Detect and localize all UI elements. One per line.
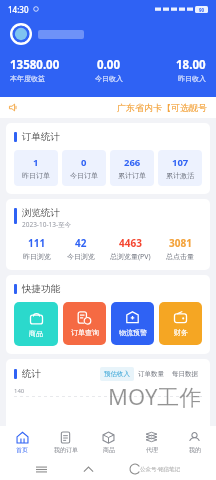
staticText: 0.00 bbox=[97, 57, 120, 73]
button[interactable]: 代理 bbox=[130, 426, 173, 458]
staticText: 统计 bbox=[22, 368, 41, 380]
staticText: 昨日浏览 bbox=[23, 252, 51, 261]
staticText: 代理 bbox=[146, 446, 158, 454]
staticText: 42 bbox=[75, 236, 87, 250]
staticText: 总点击量 bbox=[166, 252, 194, 261]
button[interactable]: 订单查询 bbox=[63, 302, 106, 345]
staticText: 本年度收益 bbox=[10, 74, 45, 83]
staticText: 3081 bbox=[169, 236, 192, 250]
staticText: 浏览统计 bbox=[22, 207, 60, 219]
staticText: 90 bbox=[199, 7, 205, 13]
staticText: 每日数据 bbox=[172, 370, 198, 378]
staticText: 首页 bbox=[16, 446, 28, 454]
staticText: 快捷功能 bbox=[22, 283, 60, 295]
staticText: 广东省内卡【可选靓号 bbox=[117, 102, 207, 113]
other: Home bbox=[83, 464, 94, 475]
staticText: 昨日收入 bbox=[178, 74, 206, 83]
button[interactable]: 财务 bbox=[159, 302, 202, 345]
button[interactable]: 42 bbox=[59, 236, 103, 261]
button[interactable]: 0 bbox=[62, 150, 106, 186]
button[interactable]: 物流预警 bbox=[111, 302, 154, 345]
staticText: 物流预警 bbox=[119, 328, 147, 337]
staticText: 266 bbox=[124, 156, 141, 169]
staticText: 111 bbox=[28, 236, 46, 250]
button[interactable]: 107 bbox=[158, 150, 202, 186]
other: Menu bbox=[36, 464, 47, 475]
staticText: 18.00 bbox=[176, 57, 206, 73]
staticText: 我的订单 bbox=[54, 446, 78, 454]
other: Back bbox=[130, 464, 140, 474]
staticText: 0 bbox=[81, 156, 87, 169]
staticText: 2023-10-13-至今 bbox=[22, 220, 72, 229]
button[interactable]: 4463 bbox=[103, 236, 158, 262]
staticText: 14:30 bbox=[8, 4, 29, 15]
staticText: MOY工作 bbox=[108, 381, 202, 411]
staticText: 4463 bbox=[119, 236, 142, 250]
staticText: 公众号·铭信笔记 bbox=[140, 465, 180, 473]
staticText: 107 bbox=[172, 156, 189, 169]
button[interactable]: 商品 bbox=[14, 302, 58, 346]
button[interactable]: 111 bbox=[14, 236, 59, 261]
staticText: 预估收入 bbox=[104, 370, 130, 378]
staticText: 订单统计 bbox=[22, 131, 60, 143]
staticText: 总浏览量(PV) bbox=[110, 252, 151, 262]
staticText: 今日浏览 bbox=[67, 252, 95, 261]
staticText: 1 bbox=[33, 156, 39, 169]
button[interactable]: 广东省内卡【可选靓号 bbox=[0, 97, 216, 118]
button[interactable]: 我的 bbox=[173, 426, 216, 458]
staticText: 今日订单 bbox=[70, 171, 98, 180]
button[interactable]: 266 bbox=[110, 150, 154, 186]
staticText: 累计订单 bbox=[118, 171, 146, 180]
staticText: 财务 bbox=[174, 328, 188, 337]
button[interactable]: 预估收入 bbox=[100, 367, 134, 381]
button[interactable]: 每日数据 bbox=[168, 367, 202, 381]
button[interactable]: 首页 bbox=[0, 426, 44, 458]
staticText: 昨日订单 bbox=[22, 171, 50, 180]
staticText: 订单查询 bbox=[71, 328, 99, 337]
button[interactable]: 订单数量 bbox=[134, 367, 168, 381]
staticText: 今日收入 bbox=[95, 74, 123, 83]
button[interactable]: 我的订单 bbox=[44, 426, 87, 458]
button[interactable]: 3081 bbox=[158, 236, 202, 261]
button[interactable]: 1 bbox=[14, 150, 58, 186]
staticText: 订单数量 bbox=[138, 370, 164, 378]
staticText: 累计激活 bbox=[166, 171, 194, 180]
staticText: 13580.00 bbox=[10, 57, 60, 73]
staticText: 我的 bbox=[189, 446, 201, 454]
staticText: 商品 bbox=[103, 446, 115, 454]
button[interactable]: 商品 bbox=[87, 426, 130, 458]
staticText: 商品 bbox=[29, 329, 43, 338]
staticText: 140 bbox=[14, 387, 25, 395]
